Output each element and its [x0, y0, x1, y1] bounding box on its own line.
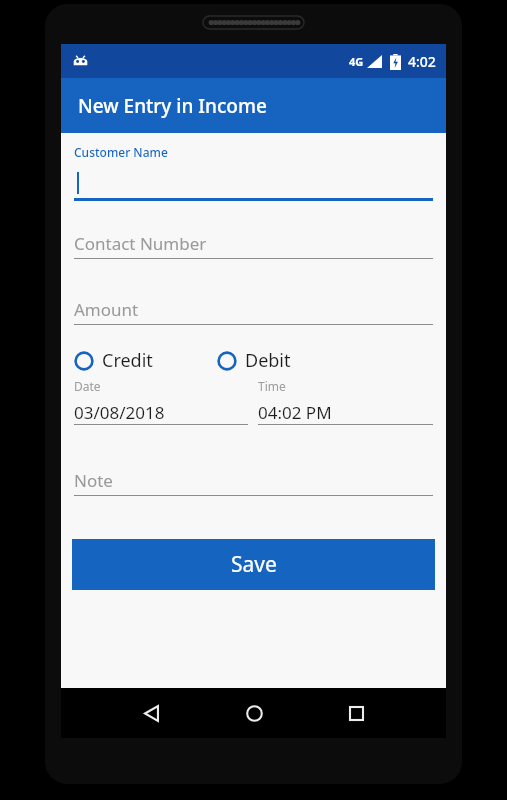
staticText: 04:02 PM [258, 401, 332, 424]
staticText: Time [258, 378, 286, 394]
staticText: Save [231, 550, 277, 579]
staticText: New Entry in Income [78, 93, 267, 119]
staticText: Debit [245, 348, 291, 373]
staticText: Contact Number [74, 232, 207, 255]
staticText: Credit [102, 348, 153, 373]
button[interactable]: Credit [74, 348, 153, 373]
button[interactable]: Save [72, 539, 435, 590]
button[interactable]: Debit [217, 348, 291, 373]
staticText: 4G [349, 54, 364, 69]
button[interactable]: Date [74, 378, 248, 425]
staticText: Note [74, 469, 113, 492]
button[interactable]: Home [232, 691, 276, 735]
button[interactable]: Recent apps [334, 691, 378, 735]
button[interactable]: Contact Number [74, 228, 433, 259]
staticText: Amount [74, 298, 139, 321]
button[interactable]: Note [74, 465, 433, 496]
staticText: Customer Name [74, 144, 168, 160]
staticText: 4:02 [408, 52, 436, 71]
button[interactable]: Amount [74, 294, 433, 325]
button[interactable]: Customer Name [74, 144, 433, 201]
staticText: Date [74, 378, 101, 394]
button[interactable]: Time [258, 378, 433, 425]
button[interactable]: Back [129, 691, 173, 735]
staticText: 03/08/2018 [74, 401, 165, 424]
